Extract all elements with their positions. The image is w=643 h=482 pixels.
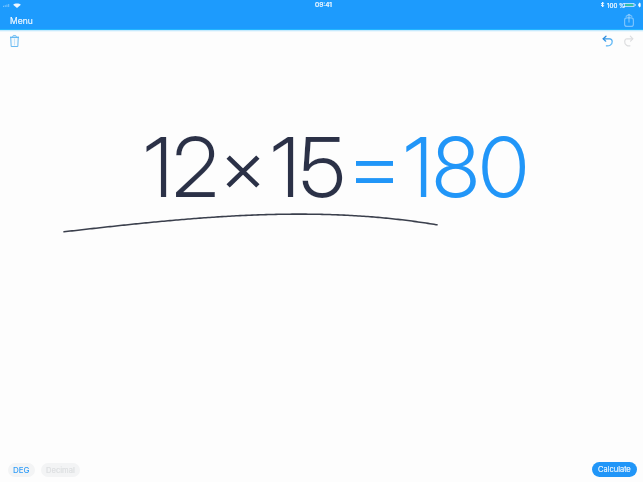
button[interactable]: Calculate — [592, 462, 637, 477]
staticText: DEG — [13, 465, 30, 475]
button[interactable]: DEG — [8, 463, 35, 477]
button[interactable]: Share — [620, 12, 638, 30]
button[interactable]: Decimal — [41, 463, 80, 477]
staticText: 09:41 — [315, 1, 332, 9]
staticText: Calculate — [598, 465, 631, 474]
staticText: Decimal — [46, 466, 75, 475]
staticText: 180 — [404, 117, 529, 217]
button[interactable]: Menu — [10, 13, 33, 29]
button[interactable]: Undo — [599, 31, 618, 50]
button[interactable]: Clear — [5, 32, 24, 51]
staticText: 15 — [271, 117, 346, 217]
button[interactable]: Redo — [619, 31, 638, 50]
staticText: Menu — [10, 16, 33, 26]
staticText: 100 % — [607, 2, 626, 10]
staticText: 12 — [144, 117, 219, 217]
